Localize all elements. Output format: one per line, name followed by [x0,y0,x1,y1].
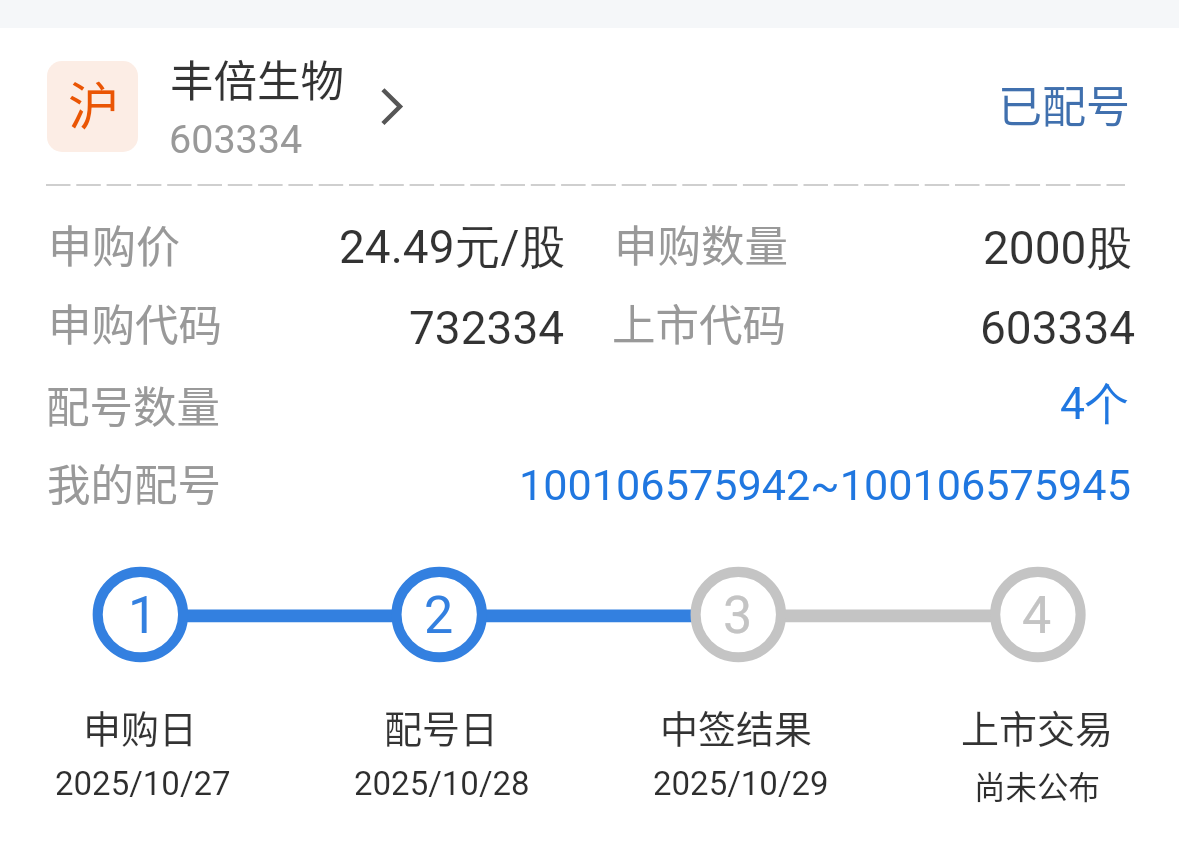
staticText: 沪 [68,65,120,140]
button[interactable]: 申购代码 [0,287,1179,364]
staticText: 上市交易 [961,699,1114,754]
staticText: 配号数量 [46,373,220,436]
button[interactable]: 申购价 [0,209,1179,286]
staticText: 申购价 [48,212,180,276]
staticText: 732334 [409,301,565,355]
button[interactable]: 配号日 [299,566,579,802]
staticText: 申购日 [83,699,198,754]
staticText: 1 [128,585,158,646]
staticText: 4个 [1060,376,1130,432]
button[interactable]: 我的配号 [0,442,1179,519]
staticText: 申购数量 [614,212,788,275]
button[interactable]: 上市交易 [898,566,1178,802]
staticText: 3 [723,585,753,646]
staticText: 2000股 [983,220,1133,278]
staticText: 2 [424,585,454,646]
staticText: 2025/10/28 [354,764,530,803]
button[interactable]: 中签结果 [598,566,878,802]
staticText: 2025/10/29 [653,764,829,803]
staticText: 丰倍生物 [170,47,344,110]
staticText: 配号日 [384,699,499,754]
staticText: 已配号 [998,72,1130,136]
button[interactable]: 配号数量 [0,365,1179,442]
staticText: 中签结果 [660,699,813,754]
staticText: 尚未公布 [974,762,1101,808]
staticText: 603334 [980,301,1136,355]
staticText: 申购代码 [48,291,222,354]
button[interactable]: Open stock detail [378,85,404,128]
staticText: 4 [1022,585,1052,646]
staticText: 603334 [169,116,303,162]
staticText: 2025/10/27 [55,764,231,803]
button[interactable]: 沪 [0,29,1179,184]
staticText: 我的配号 [47,451,221,514]
button[interactable]: 申购日 [0,566,280,802]
staticText: 24.49元/股 [339,219,566,277]
staticText: 100106575942~100106575945 [519,460,1131,511]
staticText: 上市代码 [612,291,786,354]
